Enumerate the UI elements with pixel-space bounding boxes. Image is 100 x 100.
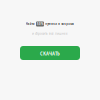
staticText: и сбросить всё лишнее (32, 31, 68, 35)
button[interactable]: СКАЧАТЬ (20, 46, 80, 60)
staticText: путёвки в закрома (45, 22, 74, 26)
staticText: 50% (37, 22, 43, 26)
staticText: Найти (26, 22, 35, 26)
staticText: СКАЧАТЬ (40, 51, 60, 57)
